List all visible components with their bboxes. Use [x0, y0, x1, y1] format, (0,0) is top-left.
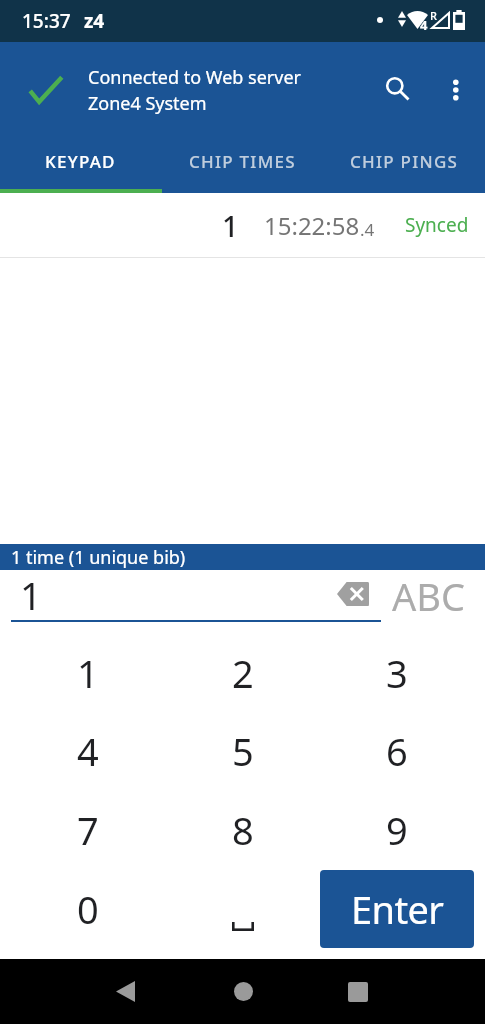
button[interactable]: ABC	[386, 570, 470, 618]
button[interactable]: Home	[213, 959, 273, 1024]
button[interactable]: Search	[371, 62, 419, 110]
staticText: ABC	[392, 570, 465, 618]
staticText: 5	[232, 725, 254, 777]
button[interactable]: 0	[10, 870, 166, 948]
staticText: R	[430, 8, 437, 23]
button[interactable]: Recents	[328, 959, 388, 1024]
button[interactable]: 1	[0, 193, 485, 257]
button[interactable]: KEYPAD	[0, 137, 161, 193]
button[interactable]: 4	[10, 712, 166, 790]
staticText: 1	[77, 647, 99, 699]
staticText: CHIP PINGS	[350, 150, 459, 173]
staticText: CHIP TIMES	[189, 150, 296, 173]
button[interactable]: Back	[95, 959, 155, 1024]
button[interactable]: 6	[319, 712, 475, 790]
button[interactable]: CHIP TIMES	[161, 137, 323, 193]
staticText: 0	[77, 883, 99, 935]
button[interactable]: 2	[165, 634, 321, 712]
staticText: 4	[77, 725, 99, 777]
staticText: 8	[232, 804, 254, 856]
staticText: 7	[77, 804, 99, 856]
staticText: 3	[386, 647, 408, 699]
staticText: .4	[360, 218, 375, 241]
staticText: 9	[386, 804, 408, 856]
staticText: 1	[20, 569, 42, 621]
staticText: Connected to Web server Zone4 System	[88, 65, 301, 115]
button[interactable]: Enter	[320, 870, 474, 948]
button[interactable]: 8	[165, 791, 321, 869]
staticText: KEYPAD	[45, 150, 116, 173]
button[interactable]: Space	[165, 870, 321, 948]
staticText: 1	[222, 206, 239, 245]
button[interactable]: CHIP PINGS	[323, 137, 485, 193]
staticText: 6	[386, 725, 408, 777]
button[interactable]: 3	[319, 634, 475, 712]
button[interactable]: More options	[431, 62, 479, 110]
button[interactable]: 5	[165, 712, 321, 790]
staticText: 4	[420, 16, 428, 34]
staticText: z4	[84, 8, 105, 34]
staticText: 2	[232, 647, 254, 699]
staticText: Enter	[351, 883, 444, 935]
staticText: 1 time (1 unique bib)	[11, 545, 186, 570]
button[interactable]: 9	[319, 791, 475, 869]
button[interactable]: 7	[10, 791, 166, 869]
staticText: 15:22:58	[264, 209, 360, 242]
button[interactable]: Backspace	[329, 572, 377, 616]
staticText: 15:37	[22, 8, 71, 34]
staticText: Synced	[405, 212, 469, 238]
button[interactable]: 1	[10, 634, 166, 712]
